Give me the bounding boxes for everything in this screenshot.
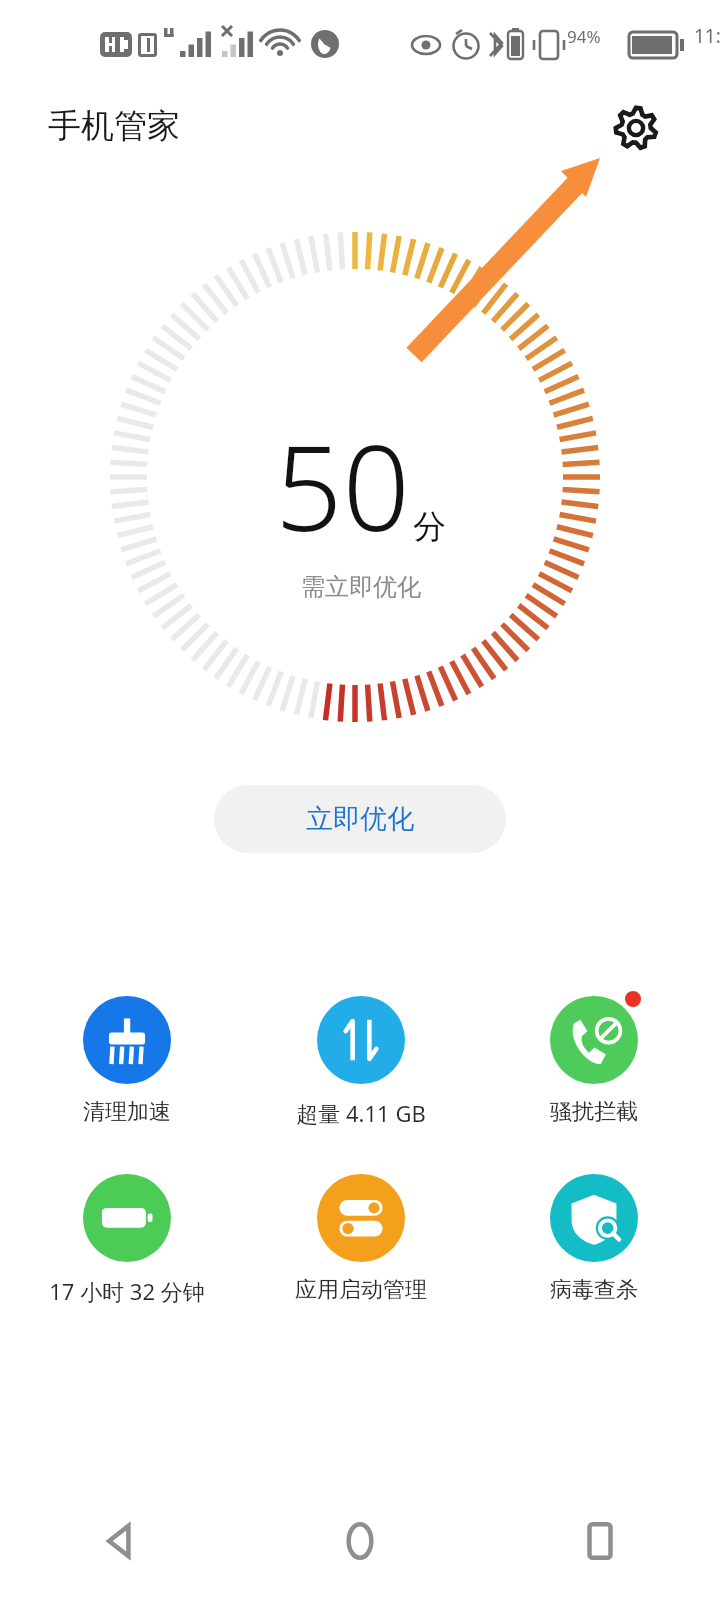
staticText: 清理加速 — [83, 1098, 171, 1126]
button[interactable]: 17 小时 32 分钟 — [19, 1166, 234, 1306]
button[interactable]: 应用启动管理 — [253, 1166, 468, 1304]
staticText: 手机管家 — [48, 105, 180, 147]
staticText: 骚扰拦截 — [550, 1098, 638, 1126]
button[interactable]: 清理加速 — [19, 988, 234, 1126]
button[interactable]: 超量 4.11 GB — [253, 988, 468, 1128]
staticText: 11:16 — [694, 23, 720, 49]
button[interactable]: Settings — [610, 102, 662, 154]
button[interactable]: Back — [0, 1482, 240, 1600]
staticText: 50 — [275, 405, 410, 566]
button[interactable]: 立即优化 — [214, 785, 506, 853]
button[interactable]: Home — [240, 1482, 480, 1600]
button[interactable]: 骚扰拦截 — [486, 988, 701, 1126]
staticText: 立即优化 — [306, 802, 414, 836]
button[interactable]: Recents — [480, 1482, 720, 1600]
button[interactable]: 病毒查杀 — [486, 1166, 701, 1304]
staticText: 17 小时 32 分钟 — [49, 1276, 205, 1306]
staticText: 分 — [413, 506, 446, 548]
staticText: 94% — [567, 25, 601, 48]
staticText: 应用启动管理 — [295, 1276, 427, 1304]
staticText: 病毒查杀 — [550, 1276, 638, 1304]
staticText: 超量 4.11 GB — [296, 1098, 426, 1128]
staticText: 需立即优化 — [301, 572, 421, 602]
